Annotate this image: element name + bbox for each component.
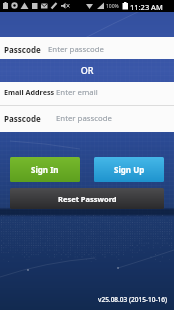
staticText: Sign In [31, 164, 59, 175]
button[interactable]: Sign Up [94, 157, 164, 182]
staticText: Email Address [4, 87, 55, 97]
button[interactable]: Email Address [0, 82, 174, 105]
staticText: Enter passcode [48, 44, 104, 55]
button[interactable]: Passcode [0, 106, 174, 132]
staticText: v25.08.03 (2015-10-16) [98, 295, 167, 304]
button[interactable]: Reset Password [10, 188, 164, 209]
button[interactable]: Sign In [10, 157, 80, 182]
staticText: 100% [106, 3, 119, 10]
staticText: 11:23 AM [130, 2, 163, 12]
staticText: Passcode [4, 113, 41, 124]
staticText: Reset Password [58, 194, 117, 204]
staticText: OR [0, 64, 174, 76]
staticText: Enter email [56, 87, 98, 98]
staticText: Passcode [4, 44, 41, 55]
button[interactable]: Passcode [0, 37, 174, 59]
staticText: Enter passcode [56, 113, 112, 124]
staticText: Sign Up [114, 164, 145, 175]
